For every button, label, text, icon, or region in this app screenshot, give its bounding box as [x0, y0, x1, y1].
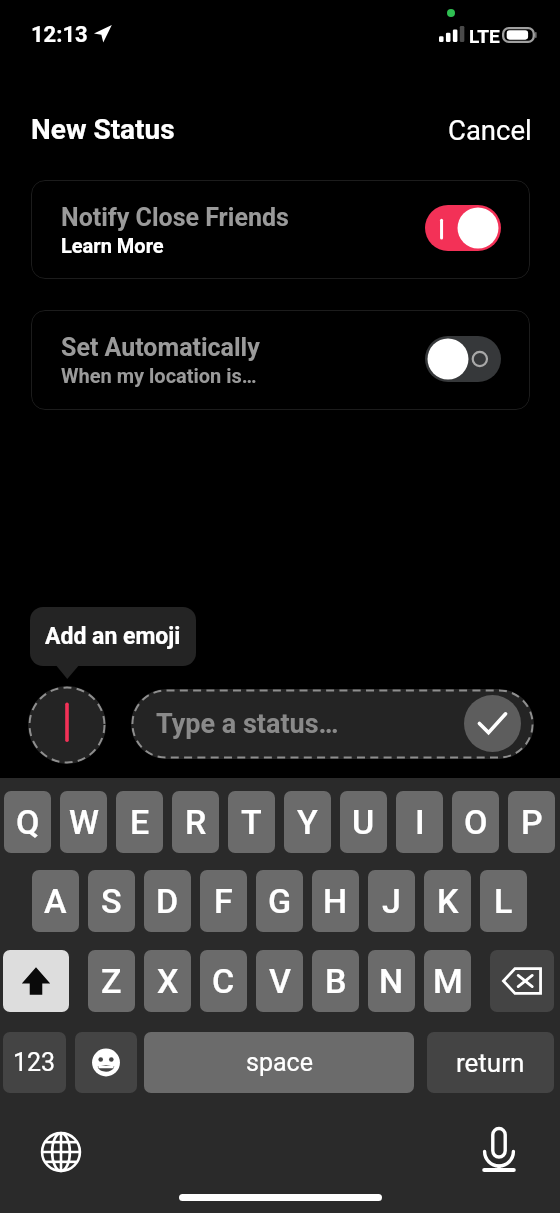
- staticText: LTE: [469, 25, 500, 47]
- staticText: A: [44, 881, 67, 921]
- staticText: D: [156, 881, 179, 921]
- button[interactable]: Set automatically off: [425, 336, 501, 382]
- staticText: Type a status…: [156, 708, 339, 740]
- staticText: Y: [297, 802, 318, 842]
- button[interactable]: O: [452, 791, 499, 853]
- staticText: W: [69, 802, 99, 842]
- staticText: Learn More: [61, 234, 164, 257]
- button[interactable]: return: [427, 1032, 554, 1093]
- button[interactable]: F: [200, 870, 247, 932]
- staticText: U: [352, 802, 375, 842]
- button[interactable]: New Status: [31, 113, 175, 146]
- staticText: Add an emoji: [45, 623, 181, 650]
- staticText: S: [101, 881, 122, 921]
- button[interactable]: A: [32, 870, 79, 932]
- button[interactable]: Add an emoji: [28, 686, 106, 764]
- button[interactable]: Switch keyboard: [39, 1130, 83, 1174]
- button[interactable]: Q: [4, 791, 51, 853]
- button[interactable]: W: [60, 791, 107, 853]
- button[interactable]: Set Automatically: [31, 310, 530, 410]
- staticText: space: [246, 1048, 313, 1077]
- button[interactable]: Notify close friends on: [425, 205, 501, 251]
- button[interactable]: C: [200, 950, 247, 1012]
- staticText: Q: [16, 802, 40, 842]
- staticText: X: [157, 961, 179, 1001]
- staticText: Set Automatically: [61, 333, 260, 362]
- staticText: 123: [13, 1048, 56, 1077]
- staticText: E: [130, 802, 150, 842]
- button[interactable]: I: [396, 791, 443, 853]
- button[interactable]: Cancel: [436, 104, 544, 156]
- button[interactable]: Type a status…: [131, 689, 534, 759]
- staticText: R: [185, 802, 207, 842]
- button[interactable]: Notify Close Friends: [31, 180, 530, 279]
- staticText: H: [323, 881, 348, 921]
- staticText: F: [214, 881, 233, 921]
- staticText: M: [433, 961, 463, 1001]
- staticText: I: [415, 802, 425, 842]
- button[interactable]: N: [368, 950, 415, 1012]
- button[interactable]: K: [424, 870, 471, 932]
- button[interactable]: Add an emoji: [30, 607, 196, 666]
- button[interactable]: J: [368, 870, 415, 932]
- staticText: Z: [101, 961, 122, 1001]
- staticText: C: [212, 961, 235, 1001]
- button[interactable]: Emoji keyboard: [75, 1032, 137, 1093]
- button[interactable]: 123: [3, 1032, 66, 1093]
- button[interactable]: Post status: [464, 695, 521, 752]
- staticText: Cancel: [448, 114, 532, 146]
- staticText: V: [269, 961, 291, 1001]
- button[interactable]: P: [508, 791, 555, 853]
- staticText: return: [456, 1048, 525, 1078]
- staticText: T: [241, 802, 262, 842]
- button[interactable]: Backspace: [490, 950, 554, 1012]
- button[interactable]: Shift: [3, 950, 69, 1012]
- button[interactable]: E: [116, 791, 163, 853]
- staticText: J: [382, 881, 401, 921]
- button[interactable]: X: [144, 950, 191, 1012]
- button[interactable]: M: [424, 950, 471, 1012]
- staticText: Notify Close Friends: [61, 203, 289, 232]
- staticText: When my location is…: [61, 364, 257, 387]
- button[interactable]: L: [480, 870, 527, 932]
- button[interactable]: Y: [284, 791, 331, 853]
- button[interactable]: Z: [88, 950, 135, 1012]
- staticText: New Status: [31, 113, 175, 146]
- button[interactable]: U: [340, 791, 387, 853]
- staticText: K: [437, 881, 459, 921]
- button[interactable]: T: [228, 791, 275, 853]
- button[interactable]: S: [88, 870, 135, 932]
- button[interactable]: V: [256, 950, 303, 1012]
- staticText: G: [268, 881, 292, 921]
- staticText: L: [494, 881, 513, 921]
- button[interactable]: G: [256, 870, 303, 932]
- button[interactable]: space: [144, 1032, 414, 1093]
- button[interactable]: D: [144, 870, 191, 932]
- staticText: P: [521, 802, 543, 842]
- staticText: N: [379, 961, 404, 1001]
- button[interactable]: R: [172, 791, 219, 853]
- staticText: B: [325, 961, 347, 1001]
- staticText: 12:13: [31, 22, 88, 48]
- staticText: O: [464, 802, 488, 842]
- button[interactable]: B: [312, 950, 359, 1012]
- button[interactable]: Dictate: [481, 1126, 517, 1172]
- button[interactable]: H: [312, 870, 359, 932]
